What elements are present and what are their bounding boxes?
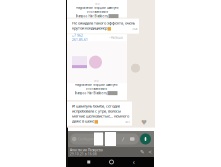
- staticText: Не ожидала такого эффекта, очень: [72, 20, 135, 26]
- staticText: крутой кондиционер: [72, 25, 107, 31]
- staticText: даже в шоке: [72, 118, 94, 124]
- staticText: +7 962 261-85-61: [72, 33, 88, 42]
- staticText: /: [122, 135, 124, 143]
- staticText: ≺: [148, 149, 152, 155]
- staticText: 14:11: [125, 120, 130, 124]
- staticText: мягкие шелковистые... немного: [72, 113, 129, 119]
- staticText: Натуральный твердый шампунь: [76, 6, 118, 9]
- staticText: 29.10.21 в 16:08: [70, 152, 97, 156]
- staticText: Сообщение: [78, 137, 97, 141]
- staticText: И шампунь бомба, сегодня: [72, 103, 120, 109]
- staticText: ♥: [141, 119, 147, 126]
- staticText: испробовала с утра, волосы: [72, 108, 121, 114]
- staticText: ~Наташа: [109, 35, 123, 40]
- staticText: ✎: [140, 149, 144, 155]
- staticText: Shampoo Hair Blackberry: [74, 91, 106, 95]
- staticText: 19:07: [94, 2, 99, 6]
- staticText: ‹: [133, 157, 135, 167]
- staticText: ополаскиватель: [85, 87, 106, 90]
- staticText: 19:07: [93, 79, 98, 83]
- staticText: 13:26: [132, 27, 137, 31]
- staticText: Анастасия Позарева: [70, 148, 103, 152]
- staticText: Натуральный твердый шампунь: [75, 83, 117, 86]
- staticText: ополаскиватель: [86, 10, 107, 13]
- staticText: Shampoo Hair Blackberry: [75, 14, 107, 18]
